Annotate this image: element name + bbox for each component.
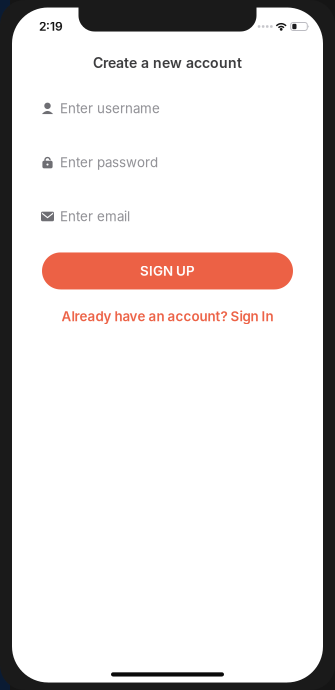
staticText: Create a new account	[93, 54, 242, 71]
staticText: Already have an account? Sign In	[61, 308, 273, 324]
button[interactable]: SIGN UP	[42, 252, 293, 289]
button[interactable]: Enter email	[41, 201, 294, 231]
button[interactable]: Already have an account? Sign In	[12, 306, 323, 326]
staticText: Enter username	[60, 100, 160, 116]
button[interactable]: Enter username	[41, 93, 294, 123]
button[interactable]: Enter password	[41, 147, 294, 177]
staticText: SIGN UP	[140, 263, 195, 279]
staticText: Enter password	[60, 154, 158, 170]
staticText: Enter email	[60, 208, 130, 224]
staticText: 2:19	[39, 19, 63, 34]
